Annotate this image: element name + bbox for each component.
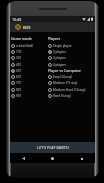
staticText: 10:48: [12, 17, 22, 22]
staticText: 601: [16, 75, 22, 79]
staticText: 4 players: [53, 63, 67, 67]
button[interactable]: 2 players: [48, 49, 96, 55]
staticText: 501: [16, 69, 22, 73]
staticText: Hard (6 avg): [53, 94, 71, 98]
button[interactable]: 170: [11, 49, 45, 55]
staticText: 3 players: [53, 56, 67, 60]
staticText: 801: [16, 88, 22, 92]
button[interactable]: 601: [11, 74, 45, 80]
button[interactable]: Medium-Hard (14 avg): [48, 87, 96, 93]
staticText: Medium (19 avg): [53, 81, 78, 85]
staticText: 401: [16, 63, 22, 67]
staticText: Player vs Computer: [48, 68, 81, 73]
staticText: cricket (tbd): [16, 44, 34, 48]
button[interactable]: Hard (6 avg): [48, 93, 96, 99]
staticText: Players: [48, 36, 61, 41]
button[interactable]: LET'S PLAY DARTS!: [10, 142, 95, 153]
staticText: 2 players: [53, 50, 67, 54]
button[interactable]: 901: [11, 93, 45, 99]
staticText: 901: [16, 94, 22, 98]
button[interactable]: 501: [11, 68, 45, 74]
button[interactable]: 401: [11, 62, 45, 68]
button[interactable]: Home: [48, 154, 57, 163]
button[interactable]: Easy (24 avg): [48, 74, 96, 80]
staticText: Single player: [53, 44, 72, 48]
staticText: 701: [16, 81, 22, 85]
button[interactable]: 4 players: [48, 62, 96, 68]
button[interactable]: Recent apps: [77, 154, 86, 163]
button[interactable]: 701: [11, 80, 45, 86]
staticText: Medium-Hard (14 avg): [53, 88, 86, 92]
button[interactable]: Medium (19 avg): [48, 80, 96, 86]
button[interactable]: 301: [11, 55, 45, 61]
staticText: LET'S PLAY DARTS!: [37, 145, 69, 150]
staticText: Easy (24 avg): [53, 75, 72, 79]
staticText: Game mode: [11, 36, 32, 41]
staticText: EDS: [23, 25, 31, 30]
button[interactable]: Single player: [48, 43, 96, 49]
button[interactable]: cricket (tbd): [11, 43, 45, 49]
staticText: 170: [16, 50, 22, 54]
button[interactable]: 801: [11, 87, 45, 93]
staticText: 301: [16, 56, 22, 60]
button[interactable]: Back: [19, 154, 28, 163]
button[interactable]: 3 players: [48, 55, 96, 61]
